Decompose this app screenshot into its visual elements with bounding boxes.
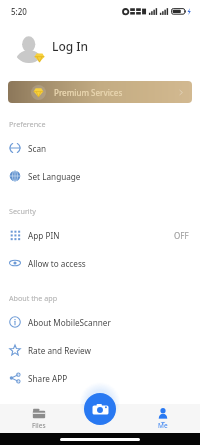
staticText: Log In: [52, 38, 89, 54]
staticText: Set Language: [28, 171, 81, 182]
staticText: Allow to access: [28, 258, 86, 269]
button[interactable]: Premium Services: [8, 81, 192, 103]
button[interactable]: Log In: [0, 22, 200, 74]
staticText: 5:20: [11, 6, 27, 17]
staticText: Scan: [28, 143, 47, 154]
button[interactable]: Files: [8, 404, 70, 433]
staticText: App PIN: [28, 230, 60, 241]
button[interactable]: App PIN: [0, 221, 200, 249]
staticText: About the app: [9, 293, 58, 303]
staticText: About MobileScanner: [28, 317, 111, 328]
button[interactable]: Allow to access: [0, 249, 200, 277]
button[interactable]: Camera: [84, 393, 116, 425]
button[interactable]: About MobileScanner: [0, 308, 200, 336]
staticText: Rate and Review: [28, 345, 91, 356]
staticText: Security: [9, 206, 36, 216]
button[interactable]: Scan: [0, 134, 200, 162]
button[interactable]: Me: [132, 404, 194, 433]
staticText: Premium Services: [54, 87, 123, 98]
staticText: Share APP: [28, 373, 68, 384]
button[interactable]: Rate and Review: [0, 336, 200, 364]
staticText: Files: [32, 421, 46, 430]
staticText: Preference: [9, 119, 46, 129]
button[interactable]: Share APP: [0, 364, 200, 392]
button[interactable]: Set Language: [0, 162, 200, 190]
staticText: OFF: [174, 230, 189, 241]
staticText: Me: [158, 421, 168, 430]
